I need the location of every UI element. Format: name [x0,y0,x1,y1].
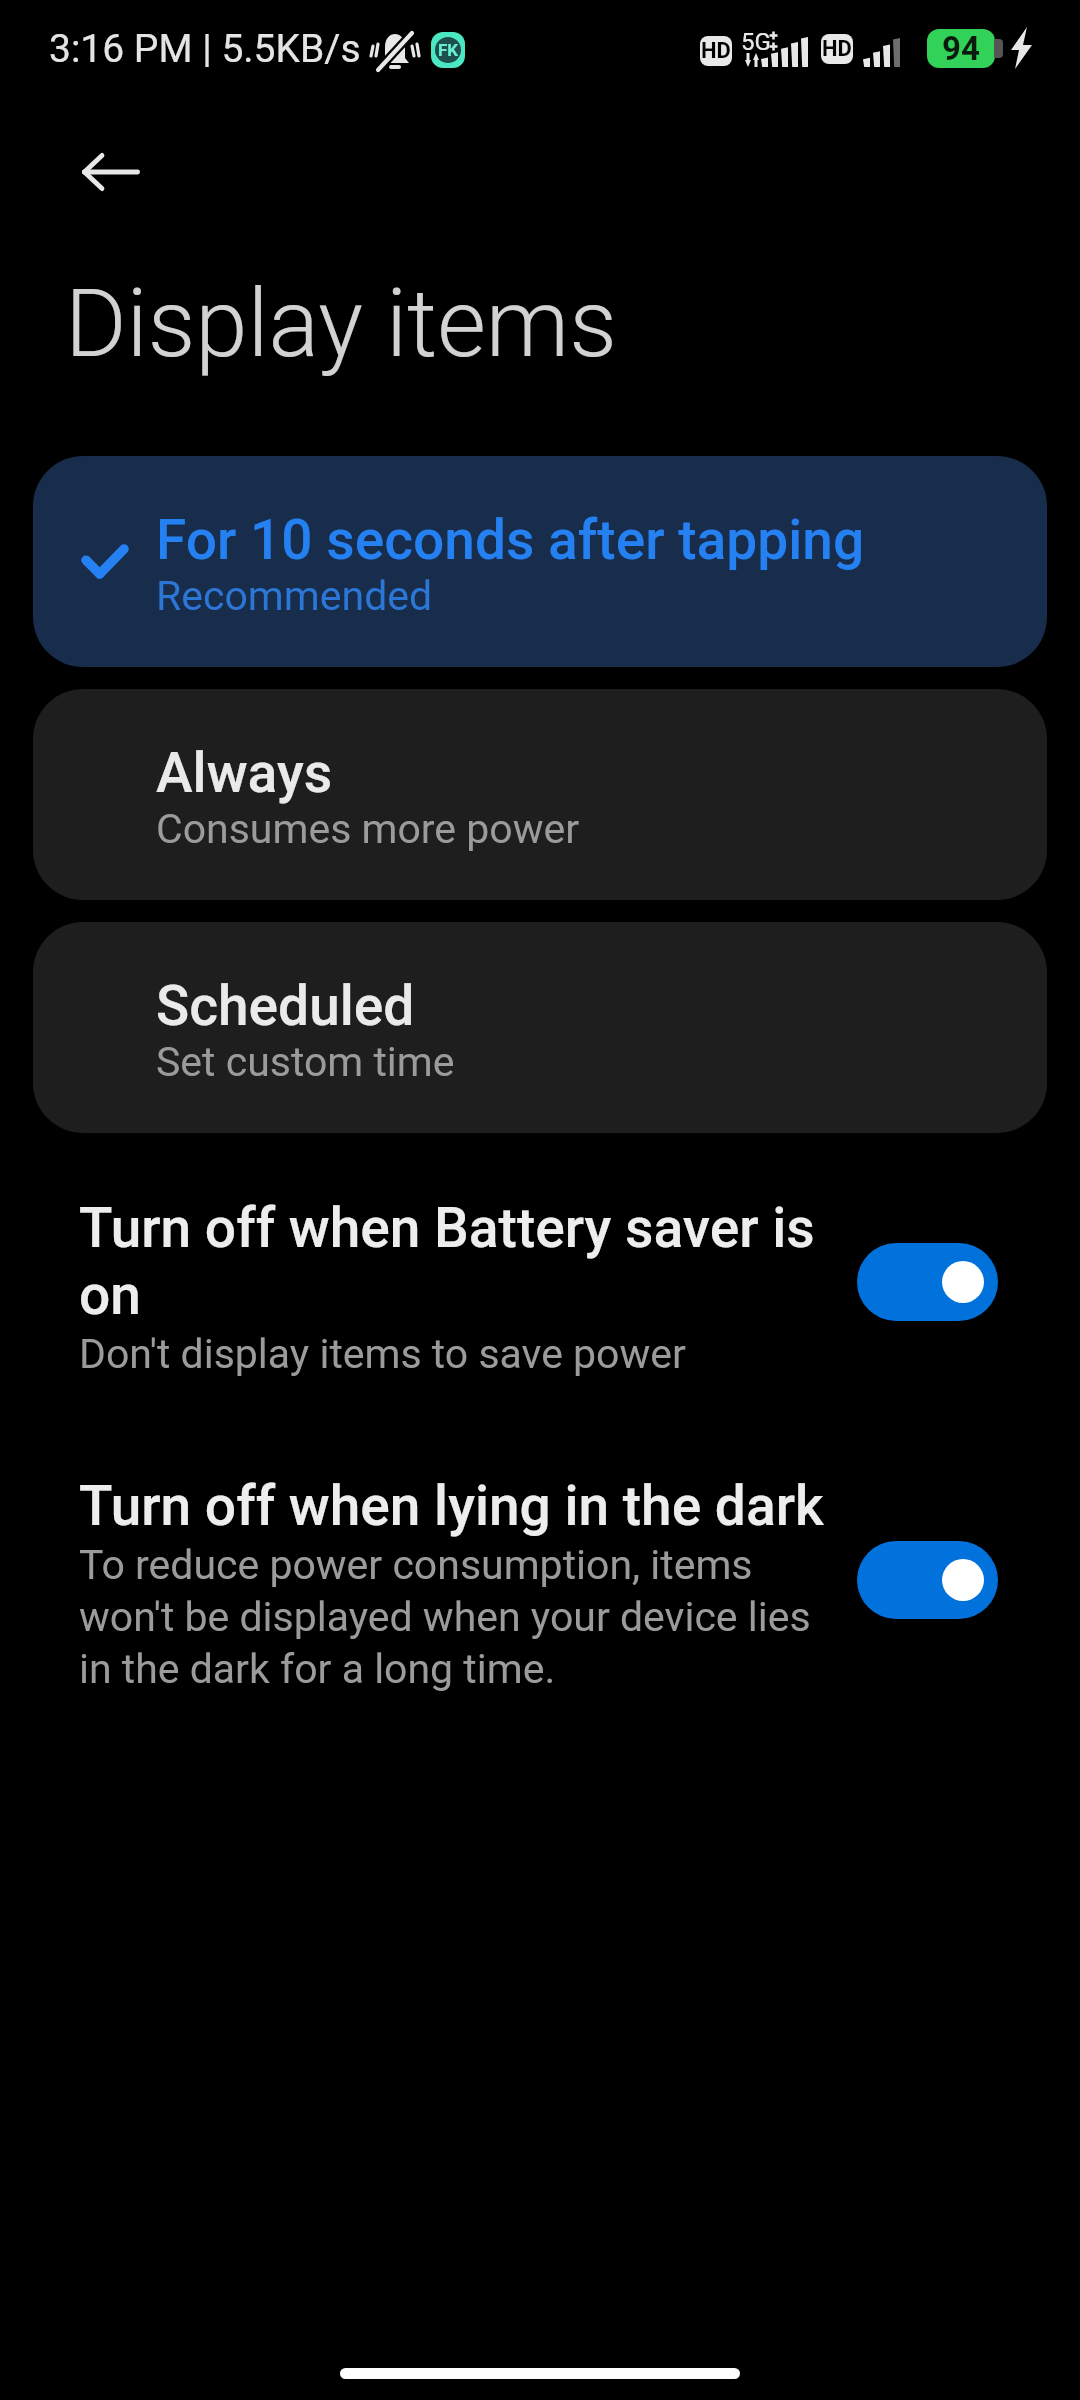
staticText: HD [822,36,852,62]
button[interactable]: Turn off when lying in the dark [0,1440,1080,1710]
staticText: Recommended [156,572,433,620]
staticText: Turn off when Battery saver is on [79,1194,849,1328]
staticText: HD [701,38,731,64]
staticText: Display items [65,269,617,379]
staticText: To reduce power consumption, items won't… [79,1538,834,1694]
staticText: Scheduled [156,976,415,1038]
staticText: FK [438,40,459,60]
staticText: Turn off when lying in the dark [79,1472,834,1539]
staticText: Consumes more power [156,805,580,853]
button[interactable]: Back [63,124,159,220]
button[interactable]: Toggle [857,1541,998,1619]
button[interactable]: Always [33,689,1047,900]
button[interactable]: For 10 seconds after tapping [33,456,1047,667]
staticText: Always [156,743,333,805]
staticText: Don't display items to save power [79,1327,849,1379]
button[interactable]: Turn off when Battery saver is on [0,1160,1080,1410]
staticText: 94 [942,29,980,68]
staticText: For 10 seconds after tapping [156,510,865,572]
staticText: 3:16 PM | 5.5KB/s [49,21,361,73]
button[interactable]: Scheduled [33,922,1047,1133]
staticText: 5G [741,28,771,56]
button[interactable]: Toggle [857,1243,998,1321]
staticText: Set custom time [156,1038,455,1086]
